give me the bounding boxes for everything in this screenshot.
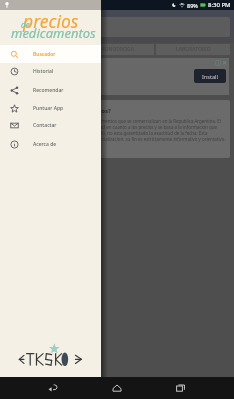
button[interactable]: Buscador: [0, 45, 101, 63]
staticText: MONODROGA: [100, 46, 134, 53]
staticText: 8:30 PM: [208, 1, 231, 9]
button[interactable]: Search: [4, 17, 230, 37]
staticText: 89%: [187, 2, 198, 9]
staticText: LABORATORIO: [176, 46, 211, 53]
button[interactable]: Historial: [0, 62, 101, 80]
staticText: de: [21, 19, 30, 30]
button[interactable]: ¿Qué es Precios de Medicamentos?: [3, 100, 230, 158]
button[interactable]: MONODROGA: [80, 44, 154, 55]
staticText: Install: [202, 73, 218, 80]
staticText: Contactar: [33, 122, 57, 129]
staticText: ¡Regístrate en CodeChef hoy y ...: [5, 73, 81, 80]
button[interactable]: Install: [194, 69, 226, 83]
button[interactable]: Recomendar: [0, 81, 101, 99]
button[interactable]: PRODUCTO: [4, 44, 78, 55]
staticText: precios: [23, 9, 79, 33]
staticText: Recomendar: [33, 87, 64, 94]
staticText: Historial: [33, 68, 54, 75]
button[interactable]: LABORATORIO: [156, 44, 230, 55]
staticText: medicamentos: [11, 24, 96, 42]
button[interactable]: Puntuar App: [0, 99, 101, 117]
button[interactable]: Acerca de: [0, 135, 101, 153]
button[interactable]: Contactar: [0, 116, 101, 134]
staticText: ⓘ: [215, 59, 221, 67]
staticText: Acerca de: [33, 141, 57, 148]
staticText: ¿Qué es Precios de Medicamentos?: [7, 107, 111, 115]
staticText: Es una aplicacion de los precios de los …: [7, 118, 226, 142]
button[interactable]: Recent apps: [170, 377, 192, 399]
button[interactable]: Back: [42, 377, 64, 399]
staticText: ✕: [222, 59, 228, 66]
staticText: Puntuar App: [33, 105, 64, 112]
button[interactable]: Home: [106, 377, 128, 399]
staticText: PRODUCTO: [27, 46, 55, 53]
staticText: Buscador: [33, 51, 56, 58]
